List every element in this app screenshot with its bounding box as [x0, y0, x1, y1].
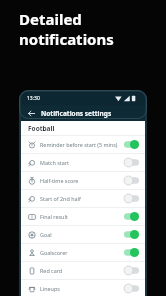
staticText: Football [28, 124, 55, 133]
button[interactable]: Match start [21, 154, 145, 171]
button[interactable]: Enabled [124, 248, 139, 257]
staticText: Lineups [40, 285, 121, 292]
button[interactable]: Disabled [124, 266, 139, 275]
staticText: Red card [40, 267, 121, 274]
staticText: Final result [40, 213, 121, 220]
staticText: 13:30 [27, 95, 40, 102]
button[interactable]: Disabled [124, 158, 139, 167]
button[interactable]: Enabled [124, 140, 139, 149]
button[interactable]: Disabled [124, 176, 139, 185]
staticText: Goalscorer [40, 249, 121, 256]
staticText: Match start [40, 159, 121, 166]
button[interactable]: Red card [21, 262, 145, 279]
button[interactable]: Final result [21, 208, 145, 225]
button[interactable]: Goal [21, 226, 145, 243]
button[interactable]: Disabled [124, 284, 139, 293]
staticText: notifications [19, 29, 114, 49]
button[interactable]: Enabled [124, 212, 139, 221]
button[interactable]: Disabled [124, 194, 139, 203]
button[interactable]: Reminder before start (5 mins) [21, 136, 145, 153]
button[interactable]: Back [26, 108, 37, 119]
staticText: Notifications settings [41, 109, 112, 118]
button[interactable]: Enabled [124, 230, 139, 239]
button[interactable]: Goalscorer [21, 244, 145, 261]
button[interactable]: Lineups [21, 280, 145, 296]
staticText: Goal [40, 231, 121, 238]
staticText: Start of 2nd half [40, 195, 121, 202]
button[interactable]: Half-time score [21, 172, 145, 189]
staticText: Half-time score [40, 177, 121, 184]
button[interactable]: Start of 2nd half [21, 190, 145, 207]
staticText: Reminder before start (5 mins) [40, 141, 121, 148]
staticText: Detailed [19, 9, 82, 29]
